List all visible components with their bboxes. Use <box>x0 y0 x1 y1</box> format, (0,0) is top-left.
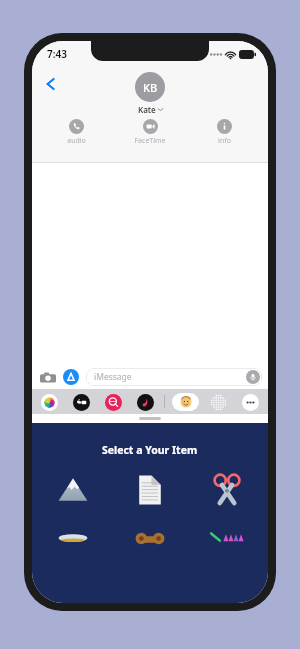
button[interactable]: More <box>238 393 263 411</box>
staticText: info <box>218 136 231 146</box>
staticText: 7:43 <box>47 47 67 61</box>
other: Dictate <box>246 370 260 384</box>
button[interactable]: Bear <box>127 527 173 573</box>
button[interactable]: info <box>202 119 246 146</box>
button[interactable]: Back <box>38 71 64 97</box>
button[interactable]: iMessage <box>86 368 262 386</box>
button[interactable]: App Store <box>62 368 80 386</box>
staticText: Select a Your Item <box>102 443 198 457</box>
button[interactable]: Apple Pay <box>69 393 94 411</box>
staticText: KB <box>143 80 158 95</box>
button[interactable]: Images <box>101 393 126 411</box>
button[interactable]: UFO <box>50 527 96 573</box>
button[interactable]: Camera <box>38 368 57 387</box>
button[interactable]: Music <box>133 393 158 411</box>
button[interactable]: Memoji <box>172 393 199 411</box>
button[interactable]: KB <box>135 72 165 115</box>
button[interactable]: Drag handle <box>139 417 161 420</box>
button[interactable]: Mountain <box>50 467 96 513</box>
button[interactable]: audio <box>54 119 98 146</box>
button[interactable]: Scissors <box>204 467 250 513</box>
staticText: Kate <box>138 104 156 115</box>
button[interactable]: Photos <box>37 393 62 411</box>
button[interactable]: Page <box>127 467 173 513</box>
button[interactable]: Party <box>204 527 250 573</box>
button[interactable]: FaceTime <box>128 119 172 146</box>
staticText: iMessage <box>94 371 132 383</box>
staticText: FaceTime <box>134 136 166 146</box>
button[interactable]: Stickers <box>206 393 231 411</box>
staticText: audio <box>67 136 86 146</box>
